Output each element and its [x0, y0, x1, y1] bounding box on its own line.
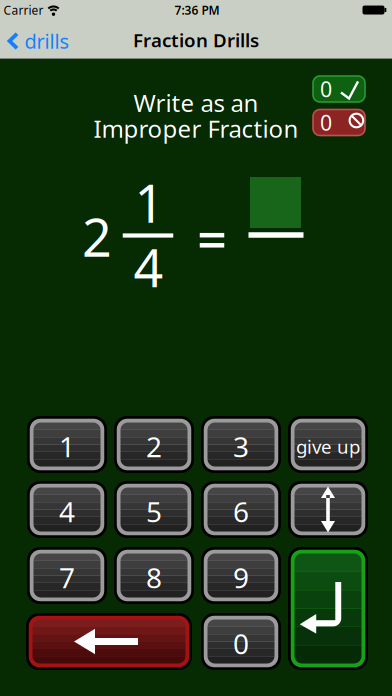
button[interactable]: 6 [201, 481, 281, 538]
button[interactable]: 5 [114, 481, 194, 538]
staticText: 3 [233, 428, 249, 465]
staticText: 9 [233, 559, 249, 596]
staticText: 0 [320, 108, 332, 137]
button[interactable]: 9 [201, 547, 281, 604]
staticText: Fraction Drills [133, 28, 259, 52]
staticText: Improper Fraction [93, 112, 298, 144]
button[interactable]: Toggle numerator/denominator [288, 481, 368, 538]
staticText: give up [296, 434, 360, 459]
button[interactable]: 7 [27, 547, 107, 604]
staticText: drills [24, 28, 69, 54]
staticText: 1 [59, 428, 75, 465]
button[interactable]: Back [7, 28, 69, 54]
staticText: 6 [233, 493, 249, 530]
button[interactable]: 4 [27, 481, 107, 538]
button[interactable]: give up [288, 416, 368, 473]
staticText: 0 [320, 75, 332, 103]
staticText: Carrier [3, 2, 43, 18]
staticText: 4 [59, 493, 75, 530]
button[interactable]: 0 [201, 613, 281, 670]
staticText: 2 [146, 428, 162, 465]
staticText: Write as an [133, 87, 258, 118]
button[interactable]: 1 [27, 416, 107, 473]
staticText: 7:36 PM [174, 2, 219, 18]
staticText: 0 [233, 625, 249, 662]
staticText: 5 [146, 493, 162, 530]
staticText: 4 [133, 232, 163, 302]
staticText: 7 [59, 559, 75, 596]
staticText: 2 [82, 202, 112, 271]
button[interactable]: 3 [201, 416, 281, 473]
button[interactable]: 2 [114, 416, 194, 473]
button[interactable]: Submit answer [288, 547, 368, 670]
button[interactable]: Delete [26, 613, 192, 670]
staticText: 1 [134, 168, 164, 237]
staticText: 8 [146, 559, 162, 596]
button[interactable]: 8 [114, 547, 194, 604]
